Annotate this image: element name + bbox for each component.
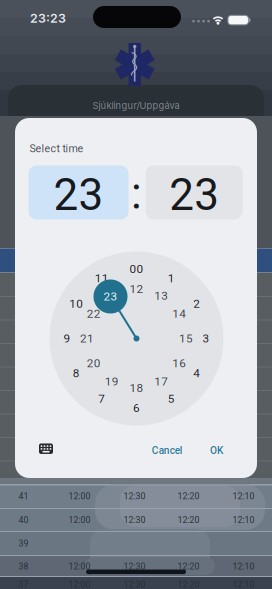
staticText: 5	[168, 392, 175, 406]
staticText: 8	[73, 366, 80, 380]
staticText: 38	[18, 561, 28, 572]
staticText: 12:30	[124, 561, 146, 572]
staticText: 23	[53, 169, 103, 221]
staticText: 00	[129, 262, 143, 276]
staticText: 18	[129, 381, 143, 395]
staticText: 12:00	[68, 579, 90, 589]
staticText: 13	[154, 289, 168, 303]
staticText: 9	[63, 332, 70, 345]
staticText: 41	[18, 491, 28, 501]
staticText: Cancel	[152, 445, 183, 456]
button[interactable]	[36, 440, 56, 458]
staticText: 7	[98, 392, 105, 406]
staticText: 39	[18, 538, 28, 549]
staticText: 12:10	[232, 515, 254, 525]
staticText: 4	[193, 366, 200, 380]
button[interactable]: 23	[28, 165, 128, 219]
staticText: 12:10	[232, 561, 254, 572]
staticText: 12:10	[232, 491, 254, 501]
staticText: 12:00	[68, 491, 90, 501]
staticText: 37	[18, 579, 28, 589]
staticText: 17	[154, 374, 168, 388]
staticText: 12:10	[232, 579, 254, 589]
button[interactable]: Sjúklingur/Uppgáva	[8, 85, 264, 130]
staticText: 6	[133, 401, 140, 415]
staticText: :	[131, 168, 142, 219]
staticText: 1	[168, 271, 175, 285]
staticText: 12	[129, 282, 143, 296]
staticText: 11	[95, 271, 109, 285]
staticText: 3	[202, 332, 209, 345]
button[interactable]: Cancel	[142, 437, 192, 463]
staticText: 20	[87, 356, 101, 370]
staticText: 23	[103, 290, 117, 303]
staticText: 23:23	[30, 11, 66, 26]
staticText: 12:20	[178, 515, 200, 525]
staticText: 16	[172, 356, 186, 370]
staticText: 12:20	[178, 491, 200, 501]
staticText: 12:30	[124, 515, 146, 525]
staticText: 23	[169, 169, 219, 221]
staticText: 12:00	[68, 561, 90, 572]
staticText: Sjúklingur/Uppgáva	[92, 100, 179, 111]
staticText: 12:20	[178, 561, 200, 572]
staticText: 12:20	[178, 579, 200, 589]
button[interactable]: OK	[199, 437, 233, 463]
staticText: 19	[105, 374, 119, 388]
staticText: 15	[179, 332, 193, 345]
staticText: 21	[80, 332, 94, 345]
staticText: 22	[87, 307, 101, 321]
staticText: 2	[193, 297, 200, 311]
staticText: 12:00	[68, 515, 90, 525]
staticText: OK	[210, 445, 223, 456]
staticText: 23	[105, 289, 119, 303]
staticText: 14	[172, 307, 186, 321]
staticText: 10	[69, 297, 83, 311]
staticText: 12:30	[124, 491, 146, 501]
staticText: 40	[18, 515, 28, 525]
button[interactable]: 23	[146, 165, 243, 219]
staticText: 12:30	[124, 579, 146, 589]
staticText: Select time	[29, 142, 83, 155]
